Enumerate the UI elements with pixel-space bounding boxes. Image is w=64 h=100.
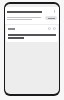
- button[interactable]: Filter: [45, 16, 57, 20]
- button[interactable]: More options: [52, 9, 57, 14]
- button[interactable]: Pin: [48, 27, 51, 30]
- button[interactable]: [7, 11, 50, 13]
- button[interactable]: Pin: [6, 25, 58, 42]
- button[interactable]: Edit: [53, 27, 56, 30]
